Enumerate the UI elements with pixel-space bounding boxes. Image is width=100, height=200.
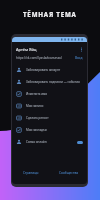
staticText: Схема онлайн bbox=[26, 140, 47, 144]
button[interactable]: Вход bbox=[75, 56, 83, 60]
staticText: Заблокировать аккаунт bbox=[26, 68, 61, 72]
button[interactable]: Сделать репост bbox=[12, 112, 87, 124]
staticText: ТЁМНАЯ ТЕМА bbox=[23, 10, 77, 18]
button[interactable]: Сообщества bbox=[49, 165, 87, 181]
staticText: Сообщества bbox=[59, 171, 78, 175]
button[interactable]: Мои закладки bbox=[12, 124, 87, 136]
staticText: Артём Яйц bbox=[16, 47, 37, 52]
staticText: Сделать репост bbox=[26, 116, 49, 120]
button[interactable]: Мои записи bbox=[12, 100, 87, 112]
staticText: Мои записи bbox=[26, 104, 44, 108]
staticText: Страницы bbox=[23, 171, 39, 175]
staticText: Вход bbox=[75, 56, 83, 60]
button[interactable]: Схема онлайн bbox=[12, 136, 87, 148]
button[interactable]: Заблокировать аккаунт bbox=[12, 64, 87, 76]
staticText: Изменить имя bbox=[26, 92, 48, 96]
staticText: Заблокировать подписки — события bbox=[26, 80, 80, 84]
button[interactable]: Страницы bbox=[12, 165, 49, 181]
staticText: https://vk.com/ilyaslavkoveznaal bbox=[16, 56, 62, 60]
staticText: Мои закладки bbox=[26, 128, 47, 132]
button[interactable]: Изменить имя bbox=[12, 88, 87, 100]
button[interactable]: Заблокировать подписки — события bbox=[12, 76, 87, 88]
button[interactable]: More options bbox=[77, 45, 85, 53]
